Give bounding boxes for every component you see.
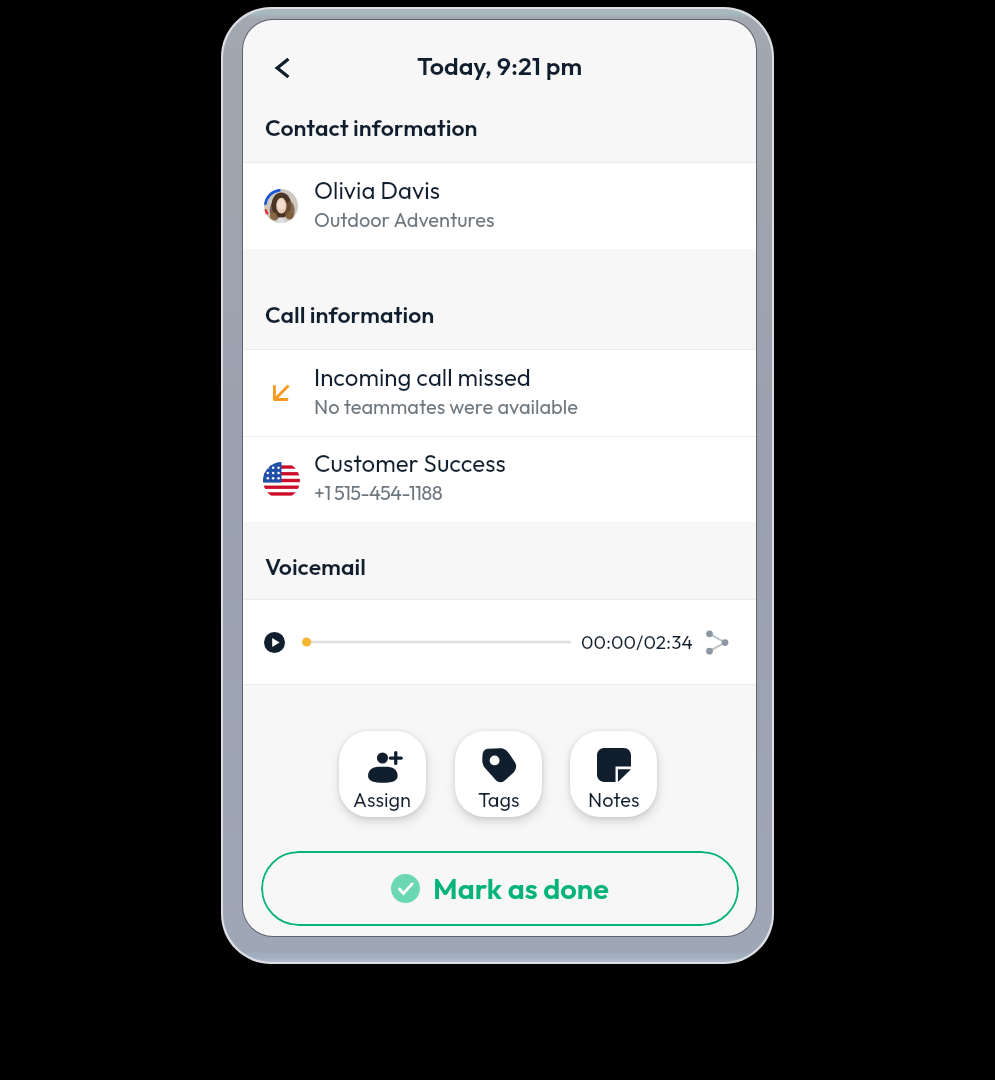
button[interactable]: Olivia Davis	[243, 163, 756, 249]
button[interactable]: Play voicemail	[264, 632, 285, 653]
button[interactable]: Assign	[339, 731, 426, 817]
staticText: Incoming call missed	[314, 362, 531, 392]
staticText: Customer Success	[314, 448, 506, 478]
staticText: Voicemail	[265, 552, 366, 581]
button[interactable]: Mark as done	[261, 851, 739, 926]
button[interactable]: Incoming call missed	[243, 350, 756, 436]
staticText: Notes	[588, 787, 640, 812]
button[interactable]: Share	[705, 628, 730, 656]
button[interactable]: Tags	[455, 731, 542, 817]
staticText: Today, 9:21 pm	[417, 50, 583, 82]
button[interactable]: Customer Success	[243, 437, 756, 522]
staticText: Outdoor Adventures	[314, 207, 495, 232]
staticText: Call information	[265, 300, 435, 329]
button[interactable]: Notes	[570, 731, 657, 817]
staticText: +1 515-454-1188	[314, 480, 443, 505]
staticText: Contact information	[265, 113, 478, 142]
staticText: No teammates were available	[314, 394, 578, 419]
staticText: 00:00/02:34	[581, 630, 693, 654]
staticText: Assign	[353, 787, 412, 812]
button[interactable]: Back	[259, 45, 305, 91]
staticText: Mark as done	[433, 870, 609, 907]
staticText: Olivia Davis	[314, 175, 440, 205]
staticText: Tags	[478, 787, 520, 812]
